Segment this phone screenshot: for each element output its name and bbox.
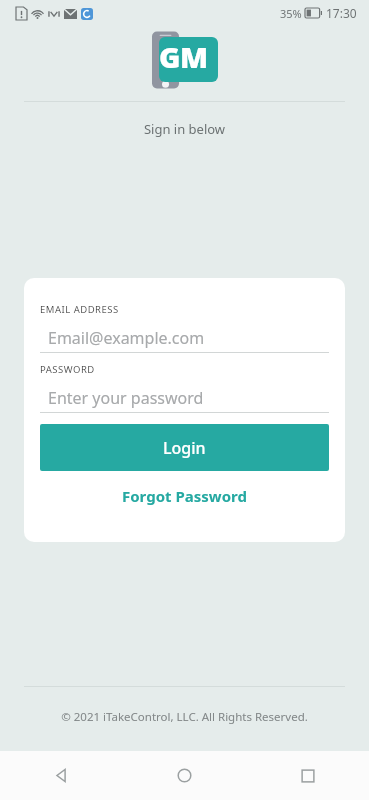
button[interactable]: Enter your password <box>40 384 329 412</box>
button[interactable]: Recent apps <box>246 751 369 800</box>
staticText: Forgot Password <box>122 486 247 506</box>
staticText: 17:30 <box>326 5 357 21</box>
button[interactable]: Home <box>123 751 246 800</box>
button[interactable]: Login <box>40 424 329 471</box>
staticText: Enter your password <box>48 387 204 409</box>
staticText: © 2021 iTakeControl, LLC. All Rights Res… <box>0 709 369 725</box>
staticText: GM1 <box>159 37 218 82</box>
staticText: Login <box>163 437 206 459</box>
staticText: Email@example.com <box>48 327 205 349</box>
staticText: EMAIL ADDRESS <box>40 303 119 316</box>
staticText: Sign in below <box>0 120 369 138</box>
staticText: PASSWORD <box>40 363 95 376</box>
button[interactable]: Email@example.com <box>40 324 329 352</box>
button[interactable]: Back <box>0 751 123 800</box>
staticText: 35% <box>280 6 302 21</box>
button[interactable]: Forgot Password <box>40 471 329 521</box>
